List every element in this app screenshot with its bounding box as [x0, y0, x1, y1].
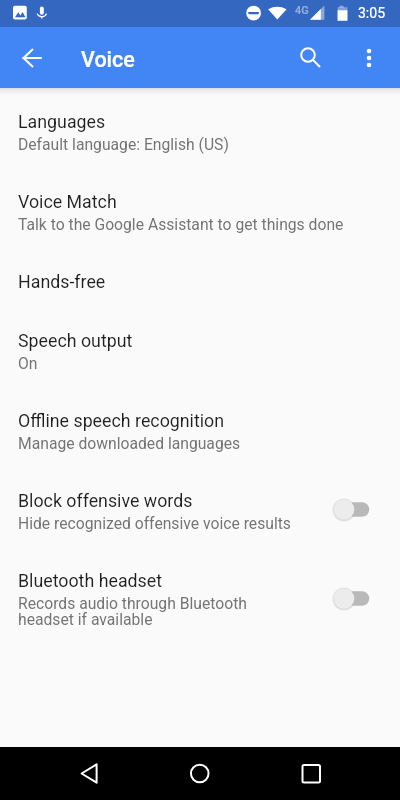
- staticText: Block offensive words: [18, 490, 193, 511]
- button[interactable]: Toggle: [336, 580, 384, 620]
- staticText: Hands-free: [18, 271, 106, 292]
- button[interactable]: Speech output: [0, 311, 400, 391]
- staticText: Talk to the Google Assistant to get thin…: [18, 215, 344, 233]
- staticText: Voice Match: [18, 191, 117, 212]
- staticText: Default language: English (US): [18, 135, 229, 153]
- button[interactable]: Search: [284, 31, 332, 79]
- staticText: Offline speech recognition: [18, 410, 225, 431]
- staticText: Bluetooth headset: [18, 570, 163, 591]
- button[interactable]: Hands-free: [0, 252, 400, 311]
- button[interactable]: Languages: [0, 92, 400, 172]
- staticText: 4G: [295, 4, 309, 17]
- staticText: Voice: [81, 47, 135, 72]
- staticText: Languages: [18, 111, 106, 132]
- button[interactable]: Block offensive words: [0, 471, 400, 551]
- staticText: 3:05: [358, 5, 385, 21]
- button[interactable]: Offline speech recognition: [0, 391, 400, 471]
- staticText: Hide recognized offensive voice results: [18, 514, 291, 532]
- button[interactable]: Toggle: [336, 491, 384, 531]
- staticText: Records audio through Bluetooth headset …: [18, 594, 294, 629]
- button[interactable]: Voice Match: [0, 172, 400, 252]
- button[interactable]: Back: [7, 33, 55, 81]
- button[interactable]: More options: [345, 31, 393, 79]
- button[interactable]: Bluetooth headset: [0, 551, 400, 648]
- staticText: Speech output: [18, 330, 133, 351]
- staticText: On: [18, 354, 38, 372]
- staticText: Manage downloaded languages: [18, 434, 241, 452]
